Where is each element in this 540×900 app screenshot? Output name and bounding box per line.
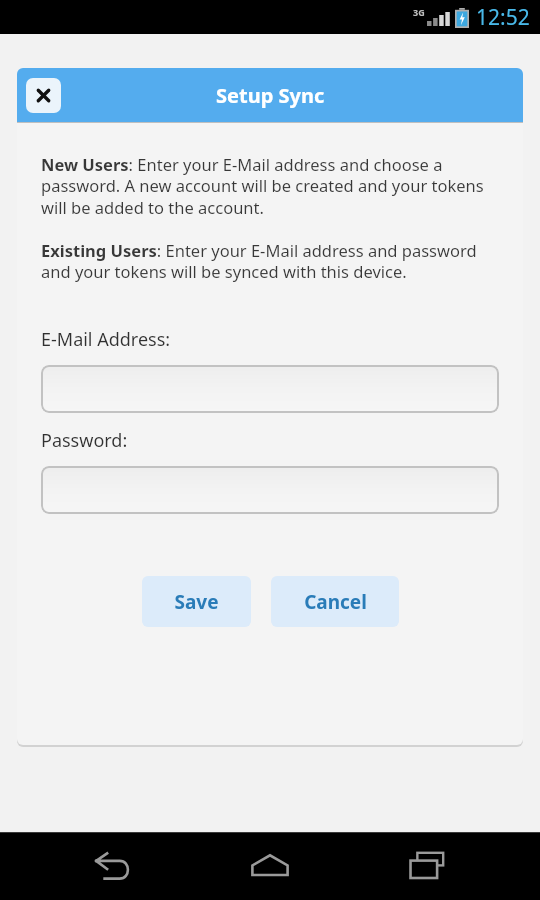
button[interactable] bbox=[41, 466, 499, 514]
staticText: E-Mail Address: bbox=[41, 327, 171, 352]
staticText: Setup Sync bbox=[216, 82, 325, 109]
button[interactable]: Close bbox=[26, 78, 61, 113]
staticText: Existing Users: Enter your E-Mail addres… bbox=[41, 239, 499, 283]
staticText: New Users: Enter your E-Mail address and… bbox=[41, 153, 499, 219]
button[interactable]: Save bbox=[142, 576, 251, 627]
staticText: 12:52 bbox=[476, 3, 530, 32]
button[interactable]: Cancel bbox=[271, 576, 399, 627]
staticText: Cancel bbox=[304, 589, 367, 615]
button[interactable]: Recent apps bbox=[383, 832, 473, 900]
button[interactable]: Back bbox=[68, 832, 158, 900]
staticText: Password: bbox=[41, 428, 128, 453]
button[interactable] bbox=[41, 365, 499, 413]
button[interactable]: Home bbox=[225, 832, 315, 900]
staticText: Save bbox=[174, 589, 219, 615]
staticText: 3G bbox=[413, 6, 425, 18]
